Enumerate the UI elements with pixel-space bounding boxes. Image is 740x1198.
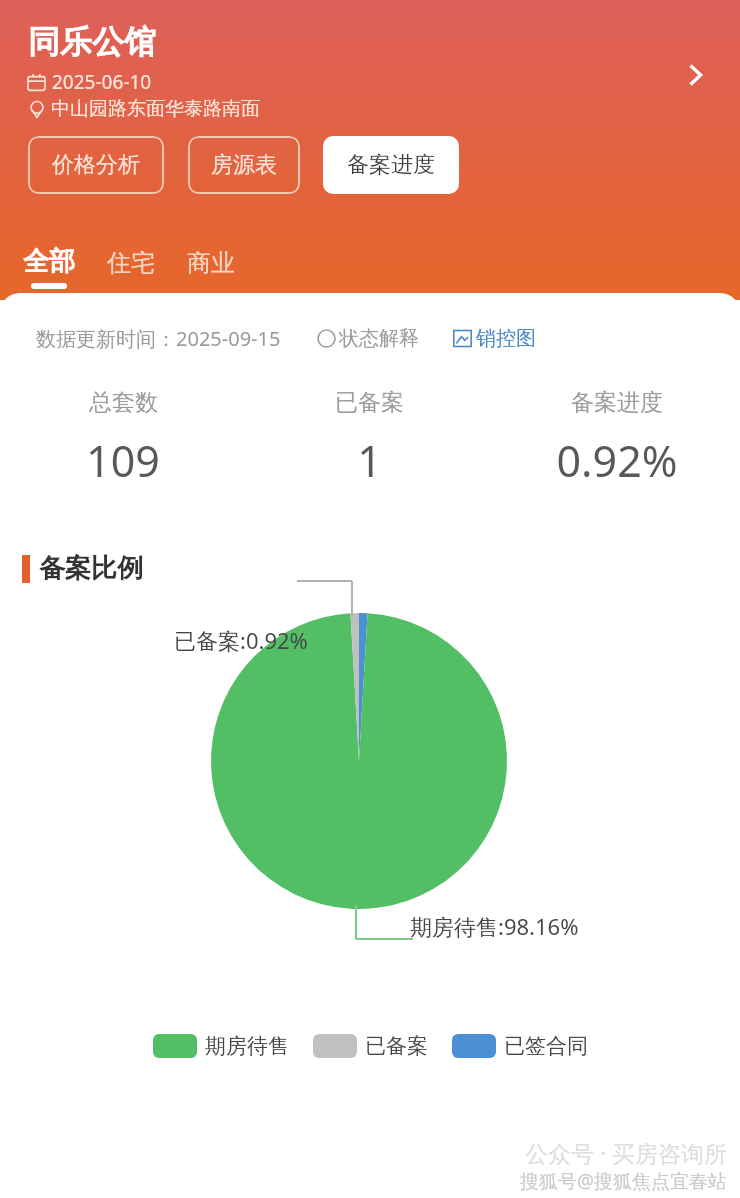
button[interactable]: 已备案 [313, 1033, 428, 1059]
button[interactable]: 备案进度 [323, 136, 459, 194]
staticText: 期房待售 [205, 1033, 289, 1059]
staticText: 109 [86, 431, 160, 490]
staticText: 备案进度 [571, 388, 663, 417]
staticText: 已备案:0.92% [174, 625, 308, 655]
staticText: 0.92% [556, 431, 678, 490]
staticText: 搜狐号@搜狐焦点宜春站 [520, 1168, 728, 1194]
button[interactable]: 价格分析 [28, 136, 164, 194]
staticText: 价格分析 [52, 151, 140, 179]
button[interactable]: 住宅 [102, 248, 160, 289]
staticText: 全部 [23, 245, 75, 278]
staticText: 期房待售:98.16% [410, 911, 579, 941]
staticText: 状态解释 [339, 326, 419, 351]
staticText: 中山园路东面华泰路南面 [51, 97, 260, 121]
button[interactable]: 总套数 [0, 388, 246, 490]
staticText: 已签合同 [504, 1033, 588, 1059]
button[interactable]: Open project detail [672, 52, 718, 98]
button[interactable]: 已备案 [246, 388, 493, 490]
staticText: 总套数 [89, 388, 158, 417]
staticText: 销控图 [476, 326, 536, 351]
button[interactable]: 已签合同 [452, 1033, 588, 1059]
button[interactable]: 备案进度 [493, 388, 740, 490]
button[interactable]: 期房待售 [153, 1033, 289, 1059]
staticText: 房源表 [211, 151, 277, 179]
staticText: 备案比例 [39, 552, 143, 585]
staticText: 已备案 [365, 1033, 428, 1059]
staticText: 备案进度 [347, 151, 435, 179]
button[interactable]: 商业 [182, 248, 240, 289]
button[interactable]: 全部 [18, 245, 80, 289]
staticText: 1 [357, 431, 382, 490]
staticText: 数据更新时间：2025-09-15 [36, 325, 281, 352]
staticText: 同乐公馆 [28, 22, 156, 62]
button[interactable]: 房源表 [188, 136, 300, 194]
button[interactable]: 状态解释 [317, 326, 419, 351]
staticText: 商业 [187, 248, 235, 278]
staticText: 公众号 · 买房咨询所 [525, 1137, 728, 1168]
staticText: 住宅 [107, 248, 155, 278]
staticText: 2025-06-10 [52, 69, 152, 95]
staticText: 已备案 [335, 388, 404, 417]
button[interactable]: 销控图 [453, 326, 536, 351]
